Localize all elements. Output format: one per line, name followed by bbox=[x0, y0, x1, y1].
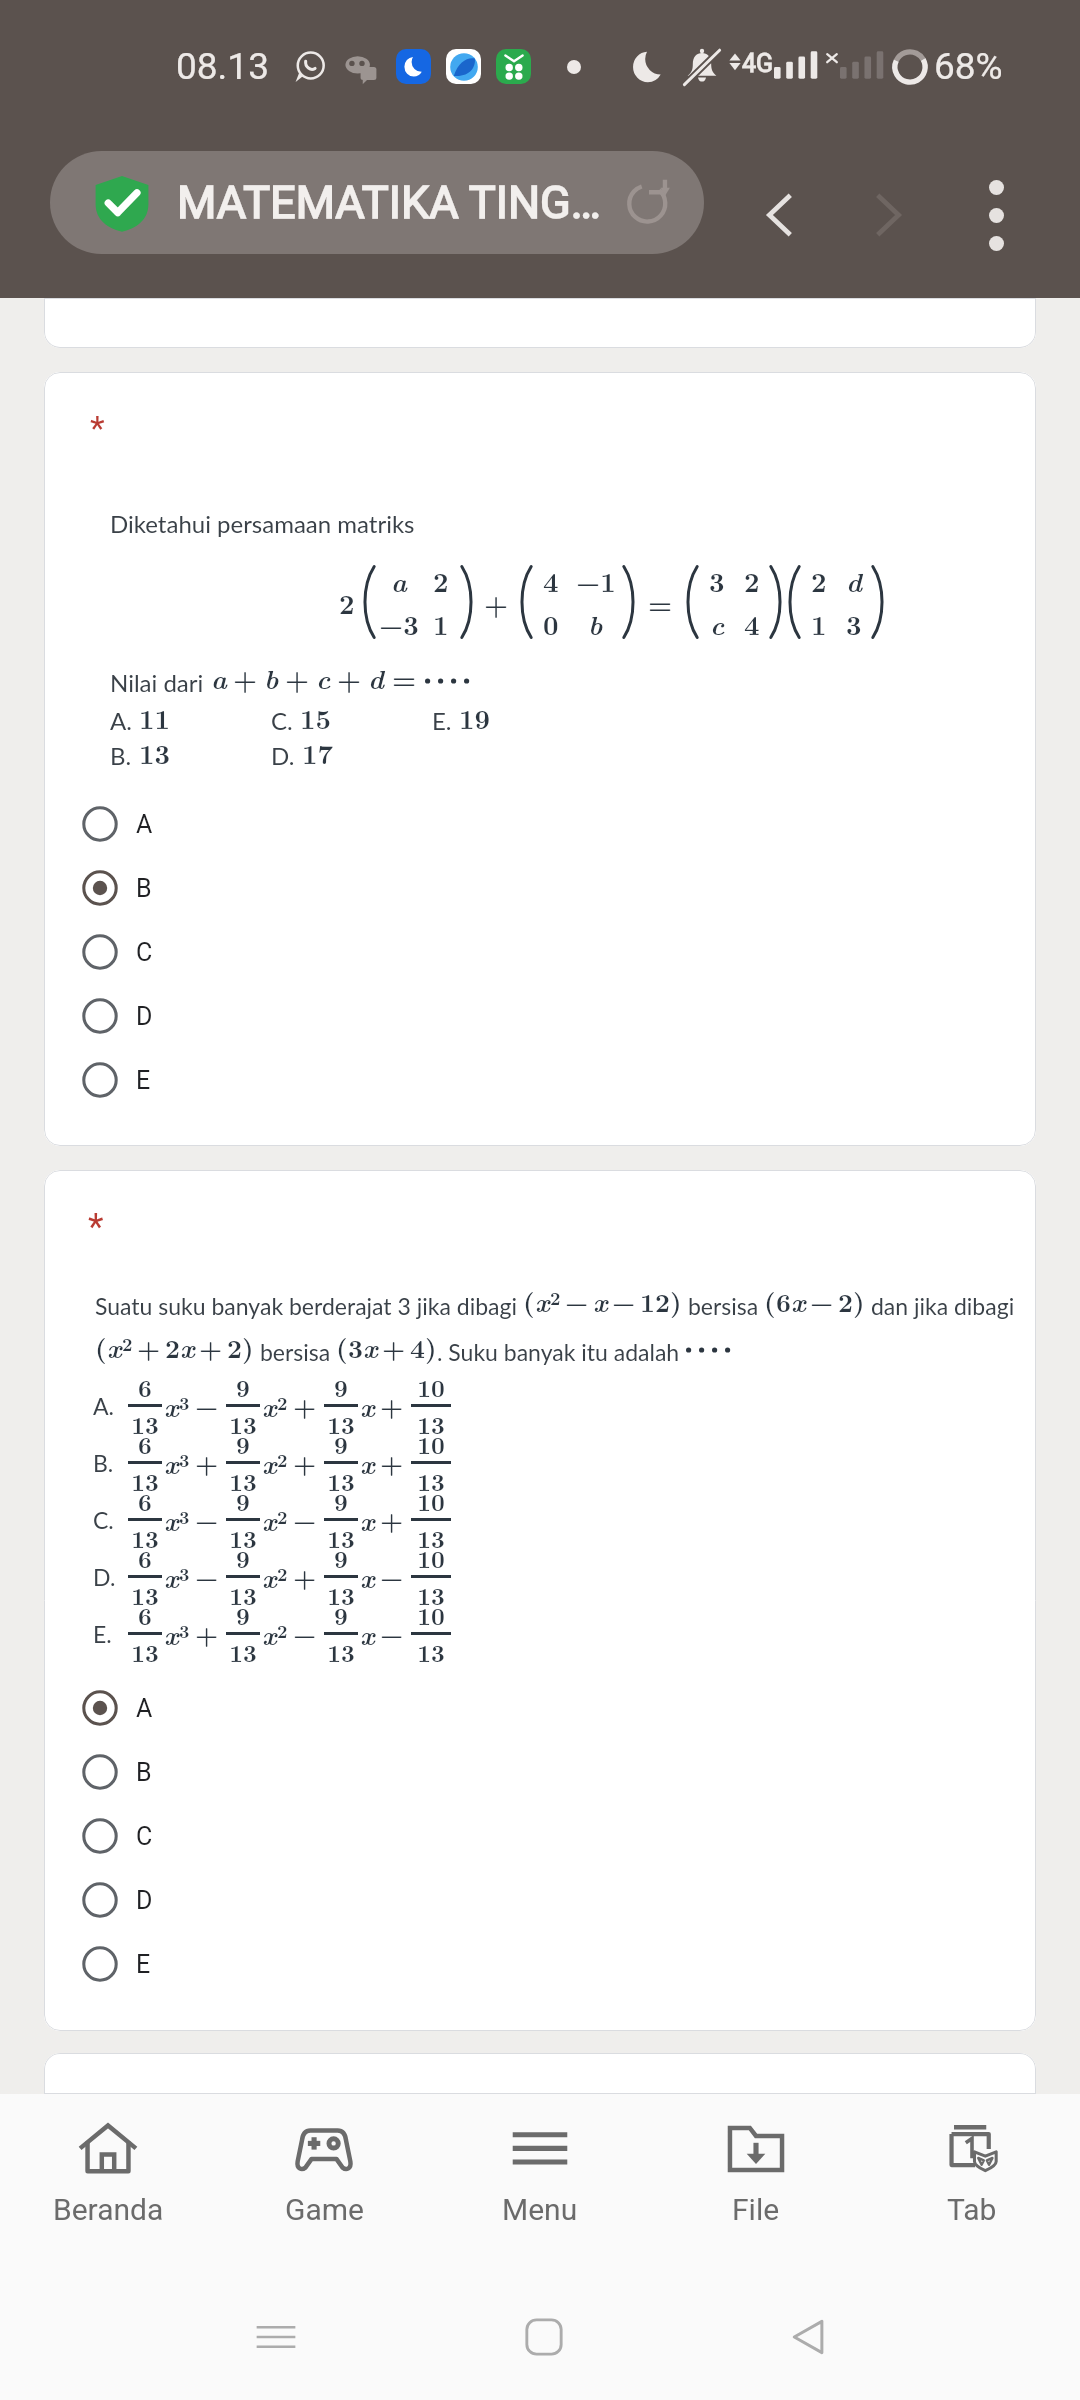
button[interactable]: MATEMATIKA TING… bbox=[50, 151, 704, 254]
staticText: = bbox=[392, 658, 417, 697]
staticText: 9 bbox=[322, 1370, 360, 1404]
staticText: + bbox=[337, 658, 362, 697]
staticText: − bbox=[810, 1283, 834, 1320]
staticText: D bbox=[136, 1886, 153, 1915]
staticText: + bbox=[484, 583, 509, 622]
button[interactable]: Recents bbox=[240, 2301, 312, 2373]
staticText: 9 bbox=[224, 1484, 262, 1518]
staticText: 13 bbox=[126, 1407, 164, 1441]
staticText: E. bbox=[93, 1620, 112, 1648]
staticText: 13 bbox=[126, 1521, 164, 1555]
staticText: x bbox=[262, 1615, 277, 1653]
staticText: + bbox=[380, 1444, 404, 1481]
staticText: File bbox=[732, 2192, 780, 2227]
button[interactable]: B bbox=[44, 856, 1036, 920]
button[interactable]: A bbox=[44, 1676, 1036, 1740]
button[interactable]: D bbox=[44, 984, 1036, 1048]
staticText: 17 bbox=[302, 733, 334, 772]
staticText: ( bbox=[95, 1329, 107, 1366]
staticText: 3 bbox=[179, 1503, 190, 1529]
staticText: Beranda bbox=[53, 2192, 164, 2227]
staticText: x bbox=[164, 1501, 179, 1539]
staticText: x bbox=[262, 1501, 277, 1539]
button[interactable]: E bbox=[44, 1048, 1036, 1112]
staticText: 11 bbox=[139, 698, 171, 737]
staticText: x bbox=[360, 1444, 375, 1482]
staticText: − bbox=[612, 1283, 636, 1320]
staticText: 68% bbox=[934, 45, 1003, 88]
button[interactable]: B bbox=[44, 1740, 1036, 1804]
staticText: dan jika dibagi bbox=[865, 1292, 1015, 1320]
staticText: 2 bbox=[227, 1329, 242, 1366]
staticText: 13 bbox=[126, 1464, 164, 1498]
button[interactable]: Forward bbox=[841, 169, 933, 261]
button[interactable]: More options bbox=[950, 169, 1042, 261]
button[interactable]: Tab bbox=[864, 2094, 1080, 2227]
staticText: ( bbox=[764, 1283, 776, 1320]
button[interactable]: Back bbox=[773, 2301, 845, 2373]
staticText: x bbox=[360, 1501, 375, 1539]
staticText: 10 bbox=[409, 1370, 453, 1404]
button[interactable]: Back bbox=[735, 169, 827, 261]
staticText: x bbox=[262, 1387, 277, 1425]
button[interactable]: Beranda bbox=[0, 2094, 216, 2227]
button[interactable]: Menu bbox=[432, 2094, 648, 2227]
staticText: C bbox=[136, 1822, 153, 1851]
staticText: 6 bbox=[126, 1427, 164, 1461]
staticText: A bbox=[136, 810, 153, 839]
staticText: B bbox=[136, 1758, 152, 1787]
staticText: ) bbox=[853, 1283, 865, 1320]
staticText: 9 bbox=[224, 1427, 262, 1461]
staticText: − bbox=[195, 1501, 219, 1538]
staticText: − bbox=[565, 1283, 589, 1320]
button[interactable]: File bbox=[648, 2094, 864, 2227]
button[interactable]: D bbox=[44, 1868, 1036, 1932]
staticText: 9 bbox=[224, 1541, 262, 1575]
staticText: 13 bbox=[322, 1521, 360, 1555]
staticText: + bbox=[195, 1615, 219, 1652]
staticText: 4 bbox=[543, 561, 559, 600]
staticText: Tab bbox=[947, 2192, 997, 2227]
staticText: 13 bbox=[409, 1635, 453, 1669]
staticText: Nilai dari bbox=[110, 668, 204, 697]
staticText: 2 bbox=[433, 561, 449, 600]
staticText: b bbox=[264, 658, 279, 697]
staticText: Menu bbox=[502, 2192, 578, 2227]
button[interactable]: C bbox=[44, 1804, 1036, 1868]
button[interactable]: C bbox=[44, 920, 1036, 984]
staticText: 3 bbox=[179, 1560, 190, 1586]
staticText: + bbox=[380, 1387, 404, 1424]
staticText: 2 bbox=[165, 1329, 180, 1366]
staticText: ( bbox=[523, 1283, 535, 1320]
staticText: x bbox=[164, 1615, 179, 1653]
staticText: 4 bbox=[744, 604, 760, 643]
button[interactable]: A bbox=[44, 792, 1036, 856]
staticText: 2 bbox=[277, 1389, 288, 1415]
staticText: x bbox=[262, 1558, 277, 1596]
staticText: 13 bbox=[409, 1464, 453, 1498]
staticText: Game bbox=[285, 2192, 364, 2227]
staticText: 6 bbox=[126, 1541, 164, 1575]
staticText: x bbox=[107, 1328, 122, 1366]
staticText: + bbox=[380, 1501, 404, 1538]
staticText: E. bbox=[432, 706, 452, 735]
staticText: 10 bbox=[409, 1484, 453, 1518]
staticText: x bbox=[791, 1282, 806, 1320]
staticText: 15 bbox=[300, 698, 332, 737]
staticText: x bbox=[164, 1387, 179, 1425]
staticText: − bbox=[293, 1501, 317, 1538]
staticText: d bbox=[846, 561, 862, 600]
button[interactable]: E bbox=[44, 1932, 1036, 1996]
staticText: −1 bbox=[576, 561, 616, 600]
staticText: Diketahui persamaan matriks bbox=[110, 509, 415, 538]
button[interactable]: Home bbox=[508, 2301, 580, 2373]
staticText: − bbox=[195, 1387, 219, 1424]
staticText: C. bbox=[93, 1506, 114, 1534]
staticText: 13 bbox=[224, 1578, 262, 1612]
staticText: x bbox=[363, 1328, 378, 1366]
staticText: + bbox=[293, 1558, 317, 1595]
button[interactable]: Game bbox=[216, 2094, 432, 2227]
staticText: d bbox=[368, 658, 384, 697]
staticText: 3 bbox=[846, 604, 862, 643]
staticText: c bbox=[710, 604, 725, 643]
